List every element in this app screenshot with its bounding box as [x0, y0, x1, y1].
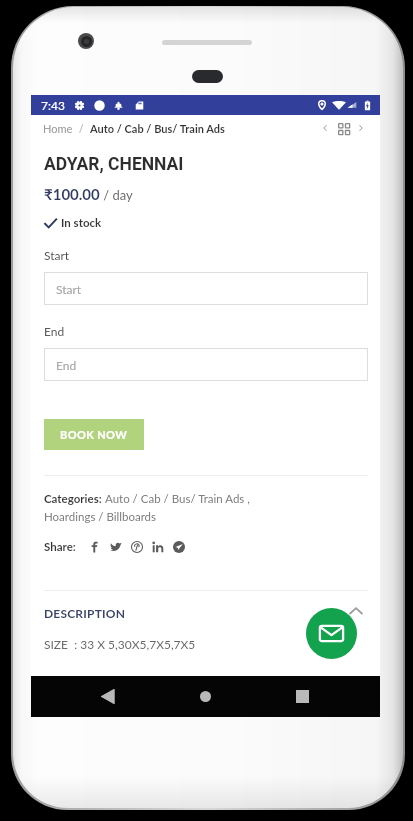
button[interactable]: Auto / Cab / Bus/ Train Ads [90, 122, 225, 135]
button[interactable]: Start [44, 272, 368, 305]
staticText: DESCRIPTION [44, 606, 126, 620]
staticText: BOOK NOW [60, 428, 128, 441]
staticText: Categories: [44, 492, 105, 506]
button[interactable]: Previous product [317, 120, 333, 136]
staticText: ₹100.00 [44, 185, 100, 203]
button[interactable]: Hoardings / Billboards [44, 510, 157, 524]
staticText: Start [44, 248, 70, 262]
staticText: End [56, 358, 77, 372]
button[interactable]: Home [189, 676, 221, 717]
staticText: ADYAR, CHENNAI [44, 154, 184, 175]
button[interactable]: Share on Telegram [168, 536, 189, 557]
button[interactable]: Contact us by email [306, 608, 357, 659]
staticText: Share: [44, 540, 76, 554]
staticText: / [73, 122, 90, 135]
button[interactable]: Share on Pinterest [126, 536, 147, 557]
button[interactable]: Share on LinkedIn [147, 536, 168, 557]
button[interactable]: BOOK NOW [44, 419, 144, 450]
button[interactable]: End [44, 348, 368, 381]
button[interactable]: DESCRIPTION [44, 606, 126, 620]
button[interactable]: Next product [353, 120, 369, 136]
button[interactable]: Share on Twitter [105, 536, 126, 557]
button[interactable]: Share on Facebook [84, 536, 105, 557]
button[interactable]: Back to products [335, 120, 351, 136]
button[interactable]: Scroll to top [345, 600, 367, 622]
staticText: SIZE : 33 X 5,30X5,7X5,7X5 [44, 637, 196, 651]
button[interactable]: Home [43, 122, 73, 135]
staticText: Start [56, 282, 82, 296]
button[interactable]: Back [92, 676, 124, 717]
button[interactable]: Auto / Cab / Bus/ Train Ads , [105, 492, 250, 506]
staticText: End [44, 324, 65, 338]
staticText: 7:43 [41, 98, 65, 112]
button[interactable]: Recent apps [286, 676, 318, 717]
staticText: / day [100, 187, 133, 203]
staticText: In stock [61, 216, 102, 230]
